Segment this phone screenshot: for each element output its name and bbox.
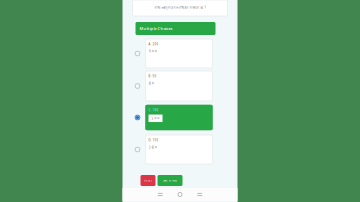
button[interactable]: D. 150 <box>122 0 237 202</box>
staticText: ২০০ <box>148 48 157 54</box>
staticText: Save & Next <box>163 179 177 182</box>
button[interactable]: Save & Next <box>157 175 182 186</box>
staticText: A. 200 <box>148 42 158 46</box>
button[interactable]: A. 200 <box>122 0 237 202</box>
staticText: C. 100 <box>148 108 158 112</box>
button[interactable]: B. 50 <box>122 0 237 202</box>
staticText: D. 150 <box>148 138 158 142</box>
staticText: Multiple Choices <box>139 26 172 31</box>
staticText: Reset <box>144 179 152 182</box>
staticText: ১৫০ <box>148 144 157 150</box>
button[interactable]: Reset <box>140 175 155 186</box>
button[interactable]: Recents <box>154 188 166 201</box>
button[interactable]: C. 100 <box>122 0 237 202</box>
staticText: সঠিক ক্রমানুসারে সংখ্যাটির মান সাজানো হয… <box>154 6 205 10</box>
button[interactable]: Back <box>194 188 206 201</box>
button[interactable]: Home <box>174 188 186 201</box>
staticText: ৫০ <box>148 80 154 86</box>
staticText: B. 50 <box>148 74 156 78</box>
staticText: ১০০ <box>151 115 160 121</box>
